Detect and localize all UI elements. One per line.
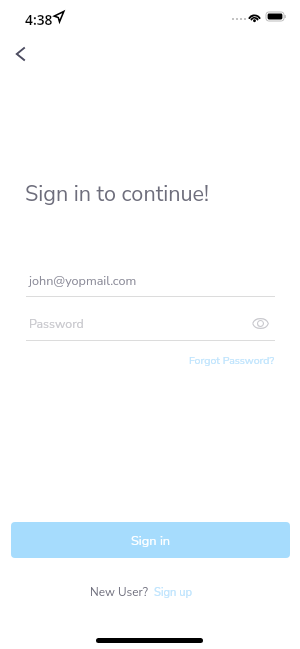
button[interactable]: Show password: [244, 307, 276, 339]
button[interactable]: Sign in: [11, 522, 290, 558]
button[interactable]: Forgot Password?: [185, 350, 279, 370]
staticText: Sign in: [131, 532, 171, 549]
staticText: Password: [29, 315, 84, 332]
staticText: New User?: [90, 584, 148, 600]
staticText: Forgot Password?: [189, 353, 275, 367]
staticText: john@yopmail.com: [29, 272, 137, 289]
staticText: 4:38: [25, 10, 53, 29]
staticText: Sign up: [154, 585, 193, 600]
staticText: Sign in to continue!: [25, 179, 210, 208]
button[interactable]: Sign up: [154, 585, 193, 600]
button[interactable]: Back: [4, 38, 36, 70]
